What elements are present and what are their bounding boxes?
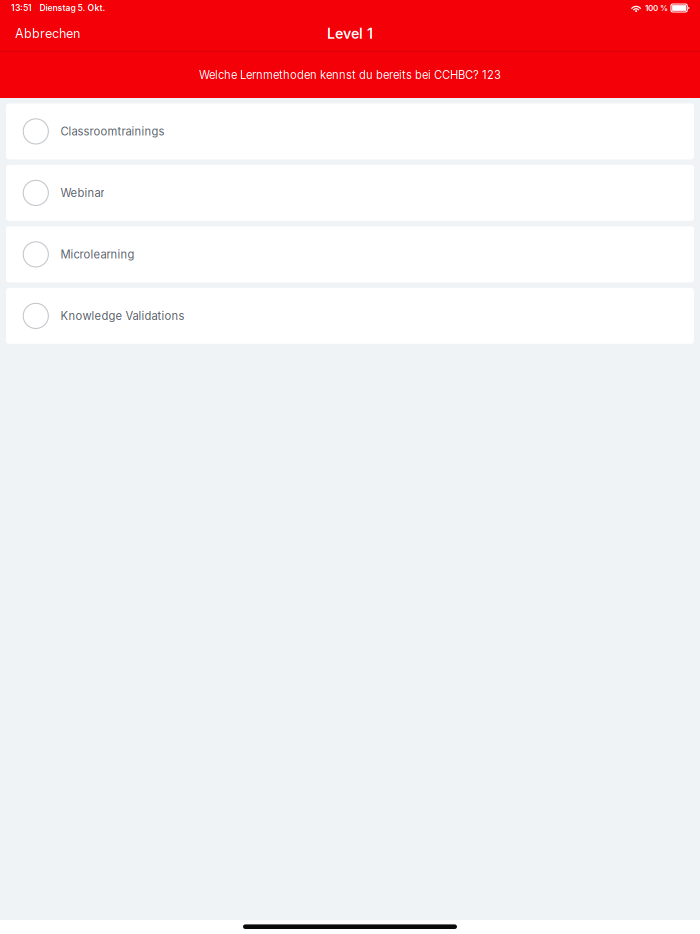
button[interactable]: Microlearning [6, 226, 694, 282]
staticText: Microlearning [60, 248, 134, 261]
staticText: 100 % [645, 3, 668, 13]
button[interactable]: Abbrechen [0, 16, 92, 51]
staticText: 13:51 [11, 3, 32, 13]
staticText: Abbrechen [15, 26, 80, 41]
staticText: Level 1 [327, 25, 373, 42]
button[interactable]: Classroomtrainings [6, 103, 694, 159]
staticText: Knowledge Validations [60, 309, 184, 323]
staticText: Classroomtrainings [60, 125, 164, 138]
button[interactable]: Webinar [6, 165, 694, 221]
staticText: Webinar [60, 186, 104, 200]
staticText: Dienstag 5. Okt. [39, 3, 105, 13]
staticText: Welche Lernmethoden kennst du bereits be… [199, 68, 501, 82]
button[interactable]: Knowledge Validations [6, 288, 694, 344]
